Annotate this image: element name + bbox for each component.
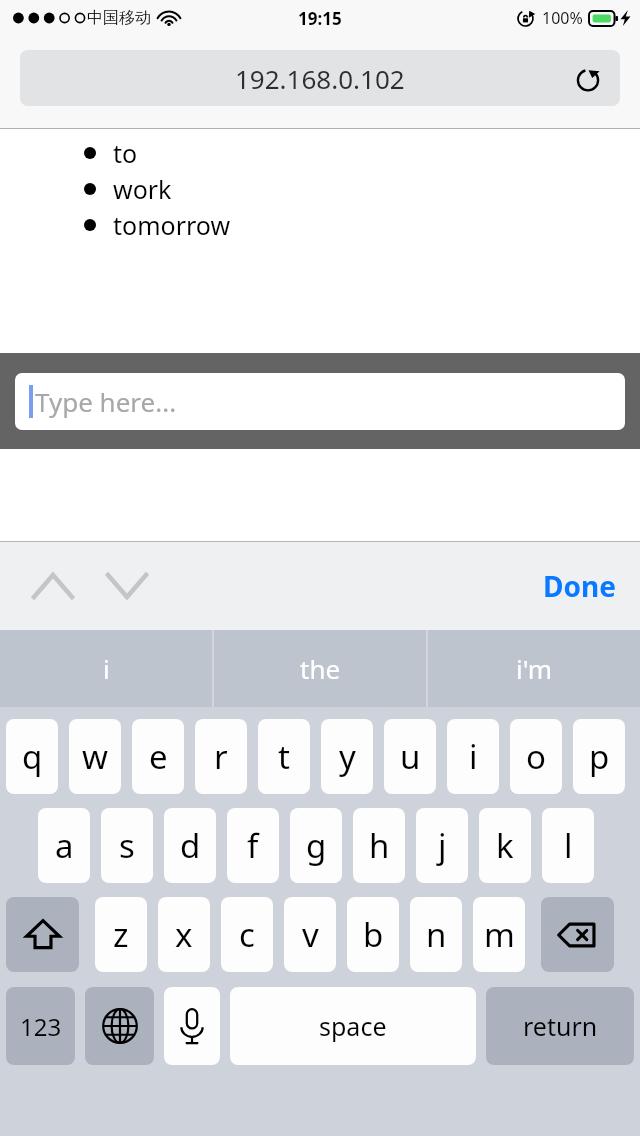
button[interactable]: Type here... xyxy=(15,373,625,430)
button[interactable]: a xyxy=(38,808,90,883)
staticText: l xyxy=(564,823,573,868)
button[interactable]: Switch keyboard xyxy=(85,987,154,1065)
staticText: work xyxy=(113,172,172,206)
staticText: v xyxy=(302,912,319,957)
staticText: 123 xyxy=(20,1010,62,1043)
button[interactable]: Done xyxy=(533,557,626,615)
button[interactable]: Dictation xyxy=(164,987,220,1065)
staticText: 中国移动 xyxy=(87,8,151,28)
staticText: k xyxy=(496,823,514,868)
button[interactable]: s xyxy=(101,808,153,883)
staticText: c xyxy=(239,912,255,957)
staticText: y xyxy=(339,734,356,779)
button[interactable]: u xyxy=(384,719,436,794)
button[interactable]: o xyxy=(510,719,562,794)
button[interactable]: m xyxy=(473,897,525,972)
button[interactable]: space xyxy=(230,987,476,1065)
staticText: e xyxy=(149,734,168,779)
staticText: u xyxy=(400,734,421,779)
staticText: o xyxy=(526,734,546,779)
button[interactable]: i xyxy=(0,630,212,707)
staticText: 19:15 xyxy=(298,7,342,30)
button[interactable]: return xyxy=(486,987,634,1065)
staticText: f xyxy=(247,823,259,868)
button[interactable]: v xyxy=(284,897,336,972)
staticText: to xyxy=(113,136,138,170)
button[interactable]: Previous field xyxy=(24,557,82,615)
staticText: b xyxy=(363,912,384,957)
staticText: n xyxy=(426,912,447,957)
staticText: s xyxy=(119,823,135,868)
button[interactable]: t xyxy=(258,719,310,794)
button[interactable]: w xyxy=(69,719,121,794)
button[interactable]: the xyxy=(214,630,426,707)
button[interactable]: 123 xyxy=(6,987,75,1065)
staticText: 100% xyxy=(542,7,583,29)
button[interactable]: h xyxy=(353,808,405,883)
staticText: return xyxy=(523,1009,598,1043)
staticText: p xyxy=(589,734,610,779)
staticText: 192.168.0.102 xyxy=(235,61,405,96)
button[interactable]: p xyxy=(573,719,625,794)
button[interactable]: r xyxy=(195,719,247,794)
staticText: i'm xyxy=(516,651,553,686)
button[interactable]: i xyxy=(447,719,499,794)
button[interactable]: e xyxy=(132,719,184,794)
staticText: g xyxy=(306,823,327,868)
staticText: a xyxy=(55,823,74,868)
staticText: q xyxy=(22,734,43,779)
button[interactable]: j xyxy=(416,808,468,883)
button[interactable]: q xyxy=(6,719,58,794)
button[interactable]: n xyxy=(410,897,462,972)
staticText: x xyxy=(175,912,193,957)
staticText: Done xyxy=(543,567,616,605)
button[interactable]: c xyxy=(221,897,273,972)
button[interactable]: 192.168.0.102 xyxy=(20,50,620,106)
button[interactable]: g xyxy=(290,808,342,883)
staticText: tomorrow xyxy=(113,208,231,242)
staticText: h xyxy=(369,823,390,868)
button[interactable]: Reload xyxy=(566,56,610,100)
staticText: the xyxy=(300,651,341,686)
button[interactable]: Shift xyxy=(6,897,79,972)
staticText: t xyxy=(278,734,290,779)
button[interactable]: Next field xyxy=(98,557,156,615)
staticText: i xyxy=(469,734,478,779)
staticText: Type here... xyxy=(35,384,177,419)
staticText: m xyxy=(484,912,515,957)
staticText: r xyxy=(214,734,228,779)
staticText: j xyxy=(438,823,447,868)
staticText: space xyxy=(319,1009,387,1043)
button[interactable]: x xyxy=(158,897,210,972)
button[interactable]: Backspace xyxy=(541,897,614,972)
staticText: z xyxy=(113,912,129,957)
button[interactable]: y xyxy=(321,719,373,794)
button[interactable]: k xyxy=(479,808,531,883)
button[interactable]: z xyxy=(95,897,147,972)
button[interactable]: f xyxy=(227,808,279,883)
button[interactable]: d xyxy=(164,808,216,883)
staticText: d xyxy=(180,823,201,868)
button[interactable]: l xyxy=(542,808,594,883)
button[interactable]: b xyxy=(347,897,399,972)
button[interactable]: i'm xyxy=(428,630,640,707)
staticText: w xyxy=(82,734,108,779)
staticText: i xyxy=(103,651,110,686)
